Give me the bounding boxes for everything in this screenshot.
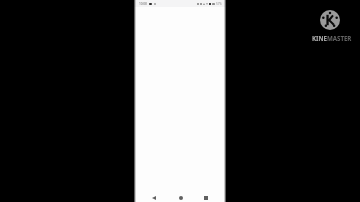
button[interactable]: Back	[149, 192, 160, 202]
staticText: KINE	[312, 34, 327, 42]
button[interactable]: Home	[175, 192, 186, 202]
staticText: 57%	[216, 2, 222, 6]
staticText: MASTER	[327, 34, 352, 42]
staticText: 10:08	[139, 2, 147, 6]
button[interactable]: Recent apps	[200, 192, 211, 202]
